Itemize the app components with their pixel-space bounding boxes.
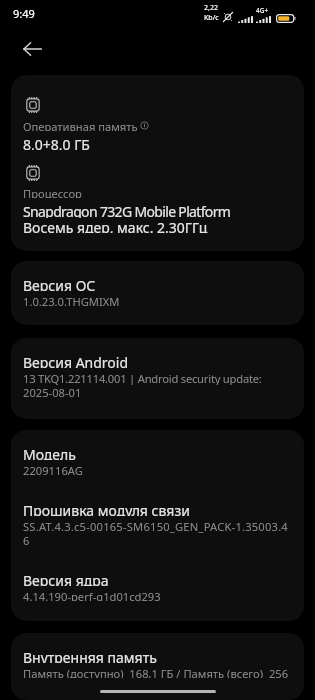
staticText: 9:49 [13,6,35,21]
button[interactable]: Процессор [11,150,304,251]
staticText: Оперативная память [23,119,138,131]
staticText: 4G+ [256,6,269,15]
staticText: SS.AT.4.3.c5-00165-SM6150_GEN_PACK-1.350… [23,519,288,533]
staticText: Память (доступно) 168,1 ГБ / Память (все… [23,666,289,678]
staticText: Версия ОС [23,276,96,291]
staticText: Процессор [23,186,82,198]
button[interactable]: Прошивка модуля связи [11,475,304,545]
staticText: Модель [23,445,76,460]
button[interactable]: Версия Android [11,338,304,419]
button[interactable]: Модель [11,430,304,475]
staticText: 2025-08-01 [23,385,82,397]
staticText: Версия ядра [23,571,109,586]
staticText: Snapdragon 732G Mobile Platform [23,202,231,218]
staticText: 8,0+8,0 ГБ [23,135,90,150]
staticText: 2,22 [204,3,218,13]
staticText: 4.14.190-perf-g1d01cd293 [23,589,161,601]
staticText: Версия Android [23,353,129,368]
staticText: Восемь ядер, макс. 2.30ГГц [23,218,208,233]
staticText: 13 TKQ1.221114.001 | Android security up… [23,371,262,385]
staticText: 2209116AG [23,463,83,475]
staticText: 6 [23,533,30,545]
staticText: Прошивка модуля связи [23,501,190,516]
button[interactable]: Внутренняя память [11,633,304,700]
staticText: Kb/c [204,13,219,23]
button[interactable]: Оперативная память [11,75,304,150]
button[interactable]: Версия ОС [11,261,304,325]
button[interactable]: Back [10,26,55,71]
staticText: 1.0.23.0.THGMIXM [23,294,120,306]
button[interactable]: Версия ядра [11,545,304,621]
staticText: Внутренняя память [23,648,157,663]
